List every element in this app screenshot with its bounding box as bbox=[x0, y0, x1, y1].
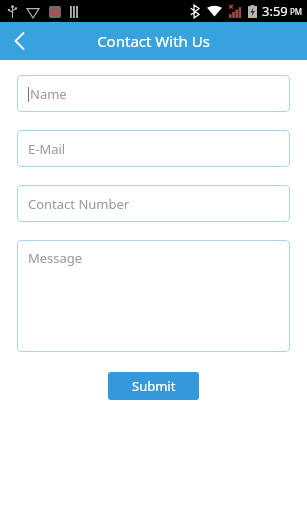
button[interactable]: Submit bbox=[108, 372, 199, 400]
staticText: Contact Number bbox=[28, 195, 130, 213]
button[interactable]: E-Mail bbox=[17, 130, 290, 167]
staticText: E-Mail bbox=[28, 140, 66, 158]
button[interactable]: Contact Number bbox=[17, 185, 290, 222]
staticText: 3:59 bbox=[262, 2, 288, 20]
staticText: Submit bbox=[132, 377, 176, 395]
staticText: Message bbox=[28, 249, 83, 267]
staticText: Name bbox=[30, 85, 67, 103]
button[interactable]: Message bbox=[17, 240, 290, 352]
staticText: Contact With Us bbox=[97, 31, 210, 51]
staticText: PM bbox=[290, 6, 303, 17]
button[interactable]: Name bbox=[17, 75, 290, 112]
button[interactable]: Back bbox=[0, 22, 40, 60]
